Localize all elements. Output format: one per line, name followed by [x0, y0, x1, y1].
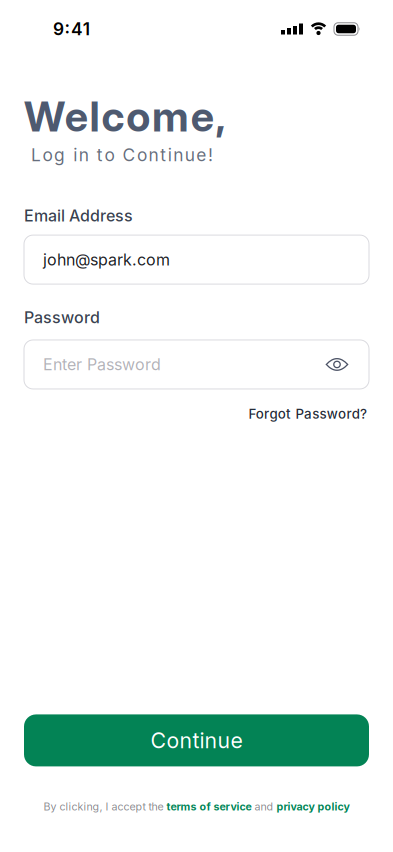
staticText: Forgot Password? [248, 406, 367, 422]
button[interactable]: Continue [24, 714, 369, 766]
staticText: Continue [150, 728, 242, 753]
staticText: terms of service [166, 800, 251, 813]
button[interactable]: Enter Password [24, 340, 369, 389]
staticText: and [251, 800, 276, 813]
staticText: privacy policy [276, 800, 349, 813]
button[interactable]: privacy policy [276, 800, 349, 813]
staticText: john@spark.com [43, 250, 170, 269]
staticText: Enter Password [43, 355, 161, 374]
staticText: Email Address [24, 206, 133, 225]
button[interactable]: john@spark.com [24, 235, 369, 284]
staticText: Password [24, 308, 100, 327]
button[interactable]: Show Password [326, 357, 348, 371]
button[interactable]: Forgot Password? [248, 406, 367, 422]
staticText: 9:41 [53, 19, 90, 39]
staticText: By clicking, I accept the [43, 800, 166, 813]
staticText: Welcome, [24, 92, 226, 141]
staticText: Log in to Continue! [31, 145, 213, 165]
button[interactable]: terms of service [166, 800, 251, 813]
